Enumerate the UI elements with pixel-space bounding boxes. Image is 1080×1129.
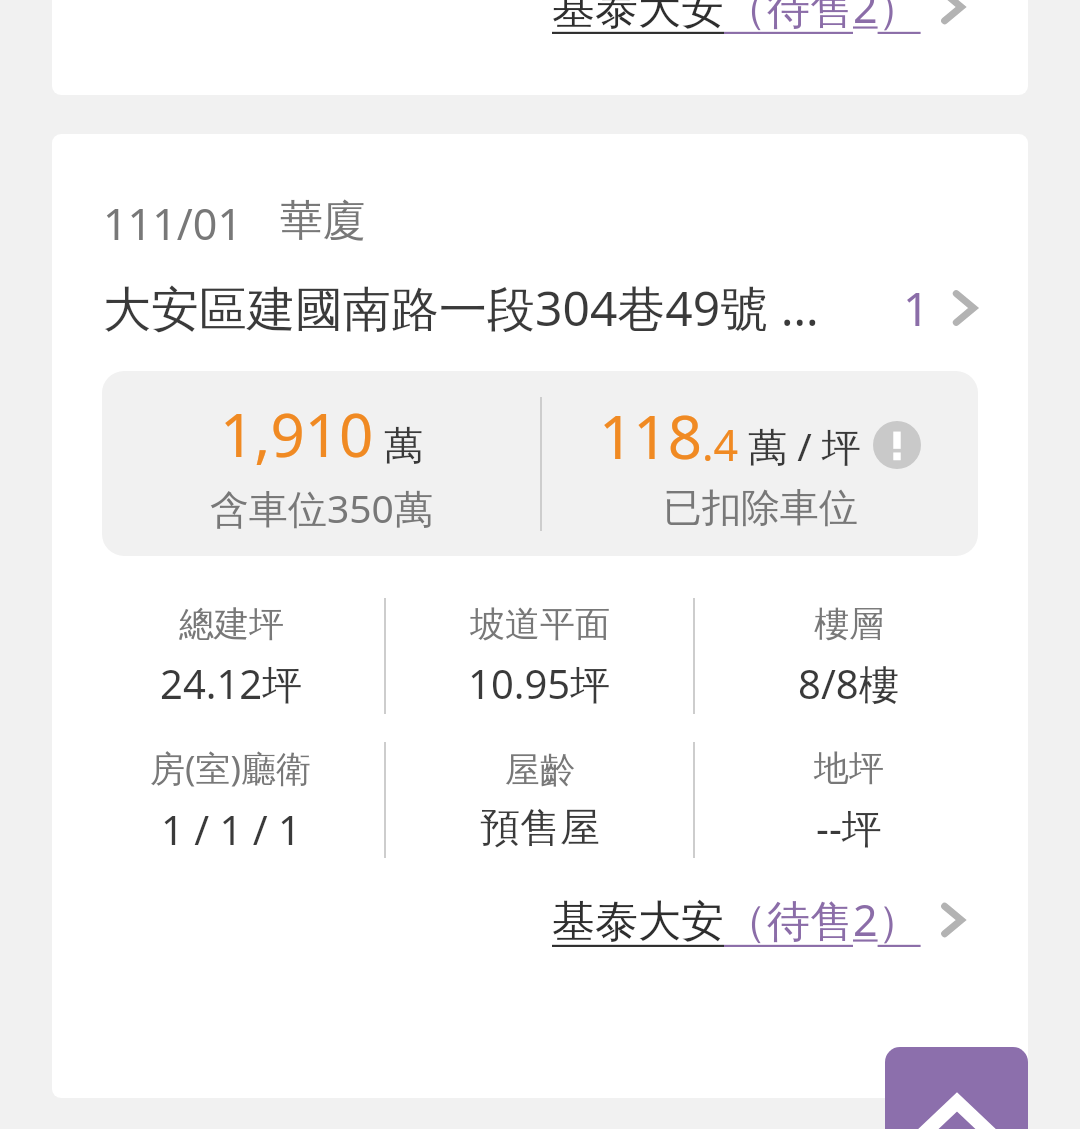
staticText: .4	[702, 415, 739, 474]
staticText: --坪	[816, 800, 882, 855]
staticText: 10.95坪	[468, 656, 611, 711]
button[interactable]: Price information	[873, 421, 921, 469]
staticText: 預售屋	[480, 802, 600, 852]
staticText: 萬	[384, 421, 423, 470]
button[interactable]: 基泰大安（待售2）	[552, 0, 975, 36]
staticText: 1,910	[220, 393, 374, 475]
staticText: 華廈	[280, 194, 366, 248]
staticText: 1	[903, 277, 930, 340]
staticText: 含車位350萬	[210, 481, 433, 534]
staticText: 屋齡	[505, 748, 575, 792]
staticText: 8/8樓	[798, 656, 899, 711]
staticText: 總建坪	[179, 602, 284, 646]
staticText: 大安區建國南路一段304巷49號 …	[103, 275, 819, 341]
button[interactable]: Scroll to top	[885, 1047, 1028, 1129]
staticText: 111/01	[103, 194, 242, 253]
staticText: 基泰大安（待售2）	[552, 0, 921, 36]
staticText: 地坪	[814, 746, 884, 790]
staticText: 118	[599, 395, 702, 477]
staticText: 1 / 1 / 1	[161, 802, 301, 856]
staticText: 已扣除車位	[663, 483, 858, 532]
staticText: 樓層	[814, 602, 884, 646]
staticText: 基泰大安（待售2）	[552, 890, 921, 949]
staticText: 房(室)廳衛	[150, 744, 312, 792]
button[interactable]: 基泰大安（待售2）	[552, 890, 975, 949]
staticText: 24.12坪	[160, 656, 303, 711]
button[interactable]: 基泰大安（待售2）	[52, 0, 1028, 95]
staticText: 坡道平面	[470, 602, 610, 646]
button[interactable]: 111/01	[52, 134, 1028, 1098]
staticText: 萬 / 坪	[748, 419, 861, 472]
